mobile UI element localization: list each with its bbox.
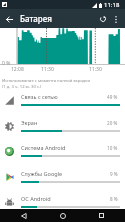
staticText: 49 %	[107, 94, 118, 100]
button[interactable]: Экран	[0, 114, 125, 139]
staticText: 8 %	[110, 196, 118, 202]
staticText: Система Android	[21, 144, 66, 151]
staticText: 10 %	[107, 145, 118, 151]
staticText: 11:30	[41, 66, 54, 73]
button[interactable]: More options	[109, 12, 123, 26]
button[interactable]: Back	[1, 11, 17, 27]
staticText: Связь с сетью	[21, 93, 58, 100]
staticText: Службы Google	[21, 170, 63, 177]
button[interactable]: Back	[9, 209, 39, 222]
staticText: Экран	[21, 119, 38, 126]
button[interactable]: Связь с сетью	[0, 88, 125, 113]
button[interactable]: Home	[48, 209, 78, 222]
staticText: Использование с момента полной зарядки	[2, 78, 90, 84]
staticText: ОС Android	[21, 195, 51, 202]
staticText: (1 д. 3 ч. 12 м. 30 с.)	[2, 84, 42, 90]
staticText: 11:18	[104, 1, 120, 9]
button[interactable]: Refresh	[95, 11, 111, 27]
staticText: 12:08	[11, 66, 24, 73]
staticText: 11:30	[89, 66, 102, 73]
button[interactable]: ОС Android	[0, 190, 125, 215]
button[interactable]: Recent apps	[86, 209, 116, 222]
staticText: Батарея	[20, 13, 52, 24]
staticText: 9 %	[110, 171, 118, 177]
staticText: 20 %	[107, 120, 118, 126]
button[interactable]: Службы Google	[0, 165, 125, 190]
button[interactable]: Система Android	[0, 139, 125, 164]
staticText: 0 %	[2, 60, 11, 67]
